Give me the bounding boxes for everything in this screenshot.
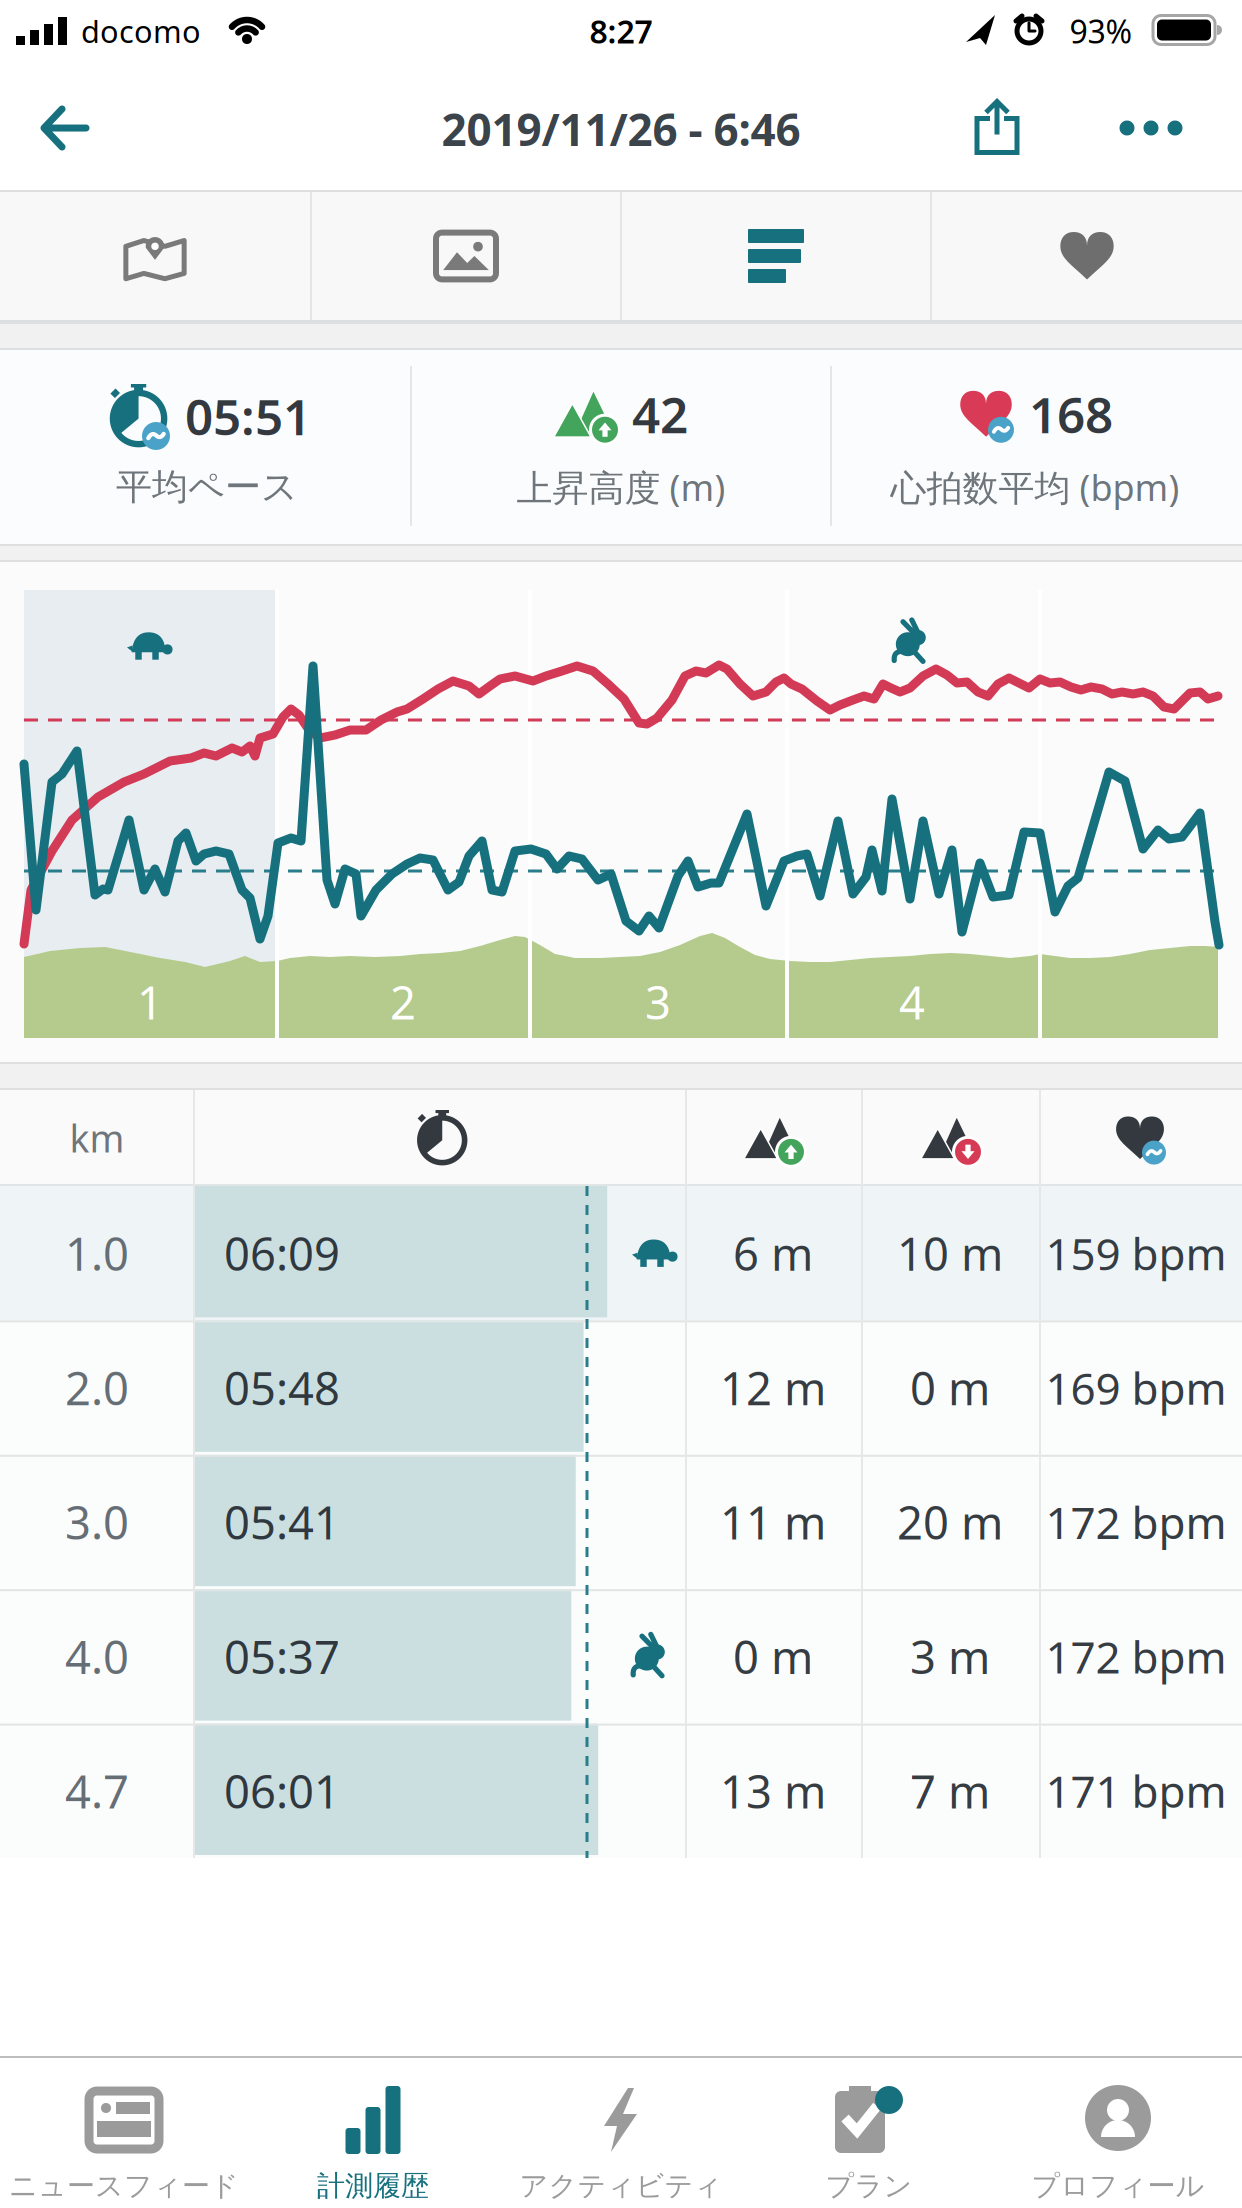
staticText: 2019/11/26 - 6:46 (441, 100, 800, 158)
staticText: 2.0 (65, 1357, 129, 1418)
staticText: 上昇高度 (m) (516, 463, 725, 511)
staticText: 7 m (910, 1761, 990, 1821)
staticText: 172 bpm (1045, 1493, 1226, 1551)
button[interactable]: プロフィール (994, 2056, 1242, 2208)
staticText: 06:01 (224, 1761, 340, 1821)
button[interactable]: 計測履歴 (249, 2056, 497, 2208)
staticText: 計測履歴 (317, 2169, 429, 2203)
button[interactable] (311, 192, 621, 320)
staticText: 平均ペース (116, 465, 298, 509)
staticText: 2 (390, 972, 416, 1032)
staticText: 4.0 (65, 1626, 129, 1686)
staticText: アクティビティ (519, 2169, 722, 2203)
button[interactable] (0, 192, 310, 320)
staticText: 05:37 (224, 1626, 340, 1686)
staticText: docomo (81, 11, 201, 51)
staticText: 心拍数平均 (bpm) (890, 463, 1179, 511)
staticText: 1.0 (65, 1223, 129, 1283)
button[interactable] (932, 192, 1242, 320)
staticText: 12 m (720, 1357, 826, 1418)
staticText: 42 (632, 381, 688, 447)
staticText: 05:48 (224, 1357, 340, 1418)
staticText: 06:09 (224, 1223, 340, 1283)
button[interactable]: ニュースフィード (0, 2056, 248, 2208)
staticText: km (69, 1113, 124, 1163)
staticText: 13 m (720, 1761, 826, 1821)
staticText: 4.7 (65, 1761, 129, 1821)
staticText: ニュースフィード (9, 2169, 239, 2203)
staticText: 1 (137, 972, 163, 1032)
button[interactable] (621, 192, 931, 320)
staticText: 93% (1069, 10, 1132, 52)
staticText: 0 m (733, 1626, 813, 1686)
staticText: 0 m (910, 1357, 990, 1418)
staticText: 172 bpm (1045, 1627, 1226, 1686)
staticText: 3 m (910, 1626, 990, 1686)
staticText: 168 (1029, 381, 1113, 447)
staticText: 05:41 (224, 1492, 340, 1552)
staticText: 171 bpm (1045, 1762, 1226, 1820)
button[interactable] (1119, 120, 1182, 135)
button[interactable]: プラン (745, 2056, 993, 2208)
staticText: 3 (645, 972, 671, 1032)
staticText: 6 m (733, 1223, 813, 1283)
staticText: プロフィール (1031, 2169, 1204, 2203)
button[interactable] (44, 107, 88, 149)
staticText: 159 bpm (1045, 1224, 1226, 1282)
staticText: 05:51 (185, 383, 311, 449)
staticText: 4 (899, 972, 925, 1032)
staticText: プラン (825, 2169, 912, 2203)
staticText: 20 m (897, 1492, 1003, 1552)
staticText: 3.0 (65, 1492, 129, 1552)
staticText: 8:27 (589, 10, 652, 52)
button[interactable]: アクティビティ (497, 2056, 745, 2208)
staticText: 169 bpm (1045, 1358, 1226, 1417)
staticText: 10 m (897, 1223, 1003, 1283)
button[interactable] (977, 100, 1017, 153)
staticText: 11 m (720, 1492, 826, 1552)
